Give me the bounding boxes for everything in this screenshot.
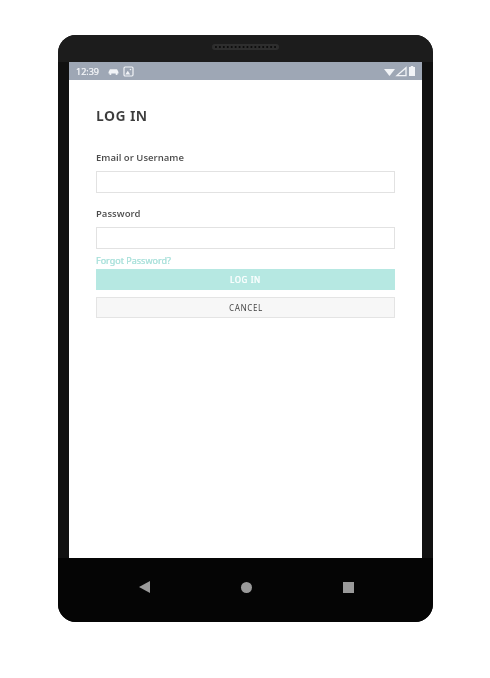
staticText: LOG IN	[96, 106, 148, 125]
staticText: Password	[96, 207, 141, 220]
staticText: 12:39	[76, 65, 100, 77]
button[interactable]: Recent apps	[331, 570, 365, 604]
staticText: Forgot Password?	[96, 254, 171, 266]
button[interactable]	[96, 227, 395, 249]
button[interactable]	[96, 171, 395, 193]
button[interactable]: Home	[229, 570, 263, 604]
staticText: LOG IN	[230, 274, 261, 285]
button[interactable]: LOG IN	[96, 269, 395, 290]
staticText: CANCEL	[229, 302, 263, 313]
button[interactable]: Forgot Password?	[96, 253, 171, 267]
button[interactable]: Back	[127, 570, 161, 604]
button[interactable]: CANCEL	[96, 297, 395, 318]
staticText: Email or Username	[96, 151, 185, 164]
